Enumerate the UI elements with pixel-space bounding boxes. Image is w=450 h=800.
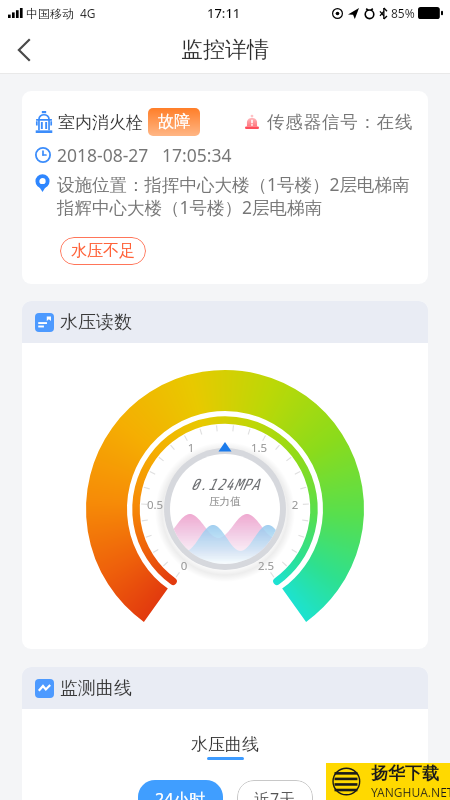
staticText: 中国移动 [26,6,74,21]
staticText: 水压不足 [71,241,135,261]
staticText: 传感器信号：在线 [267,111,414,133]
staticText: 监测曲线 [60,677,132,700]
staticText: YANGHUA.NET [371,784,450,800]
button[interactable]: Back [0,27,46,73]
button[interactable]: 近7天 [237,780,313,800]
staticText: 2018-08-27 17:05:34 [57,143,232,167]
staticText: 水压曲线 [191,734,259,755]
staticText: 1.5 [245,440,273,456]
staticText: 2 [281,497,309,513]
staticText: 0.124MPA [190,476,260,494]
staticText: 0 [170,558,198,574]
staticText: 故障 [158,112,190,132]
staticText: 室内消火栓 [58,112,143,133]
staticText: 0.5 [141,497,169,513]
staticText: 监控详情 [181,36,269,64]
staticText: 85% [391,5,415,21]
staticText: 4G [80,5,96,21]
staticText: 水压读数 [60,311,132,334]
staticText: 近7天 [254,788,296,800]
staticText: 设施位置：指挥中心大楼（1号楼）2层电梯南指辉中心大楼（1号楼）2层电梯南 [57,172,420,219]
staticText: 扬华下载 [371,763,439,784]
button[interactable]: 24小时 [138,780,223,800]
staticText: 2.5 [252,558,280,574]
staticText: 24小时 [155,788,206,800]
staticText: 1 [177,440,205,456]
staticText: 17:11 [207,4,241,22]
staticText: 压力值 [209,495,241,508]
